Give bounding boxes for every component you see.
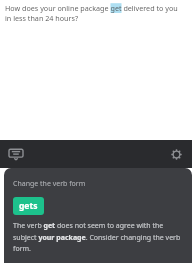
staticText: The verb get does not seem to agree with… xyxy=(13,221,183,253)
button[interactable]: Settings xyxy=(168,146,184,162)
staticText: Change the verb form xyxy=(13,179,86,189)
button[interactable]: gets xyxy=(13,197,44,215)
staticText: gets xyxy=(19,200,38,212)
staticText: How does your online package get deliver… xyxy=(5,3,178,13)
button[interactable]: Change the verb form xyxy=(4,168,192,263)
staticText: in less than 24 hours? xyxy=(5,13,79,23)
button[interactable]: Hide keyboard xyxy=(8,146,24,162)
